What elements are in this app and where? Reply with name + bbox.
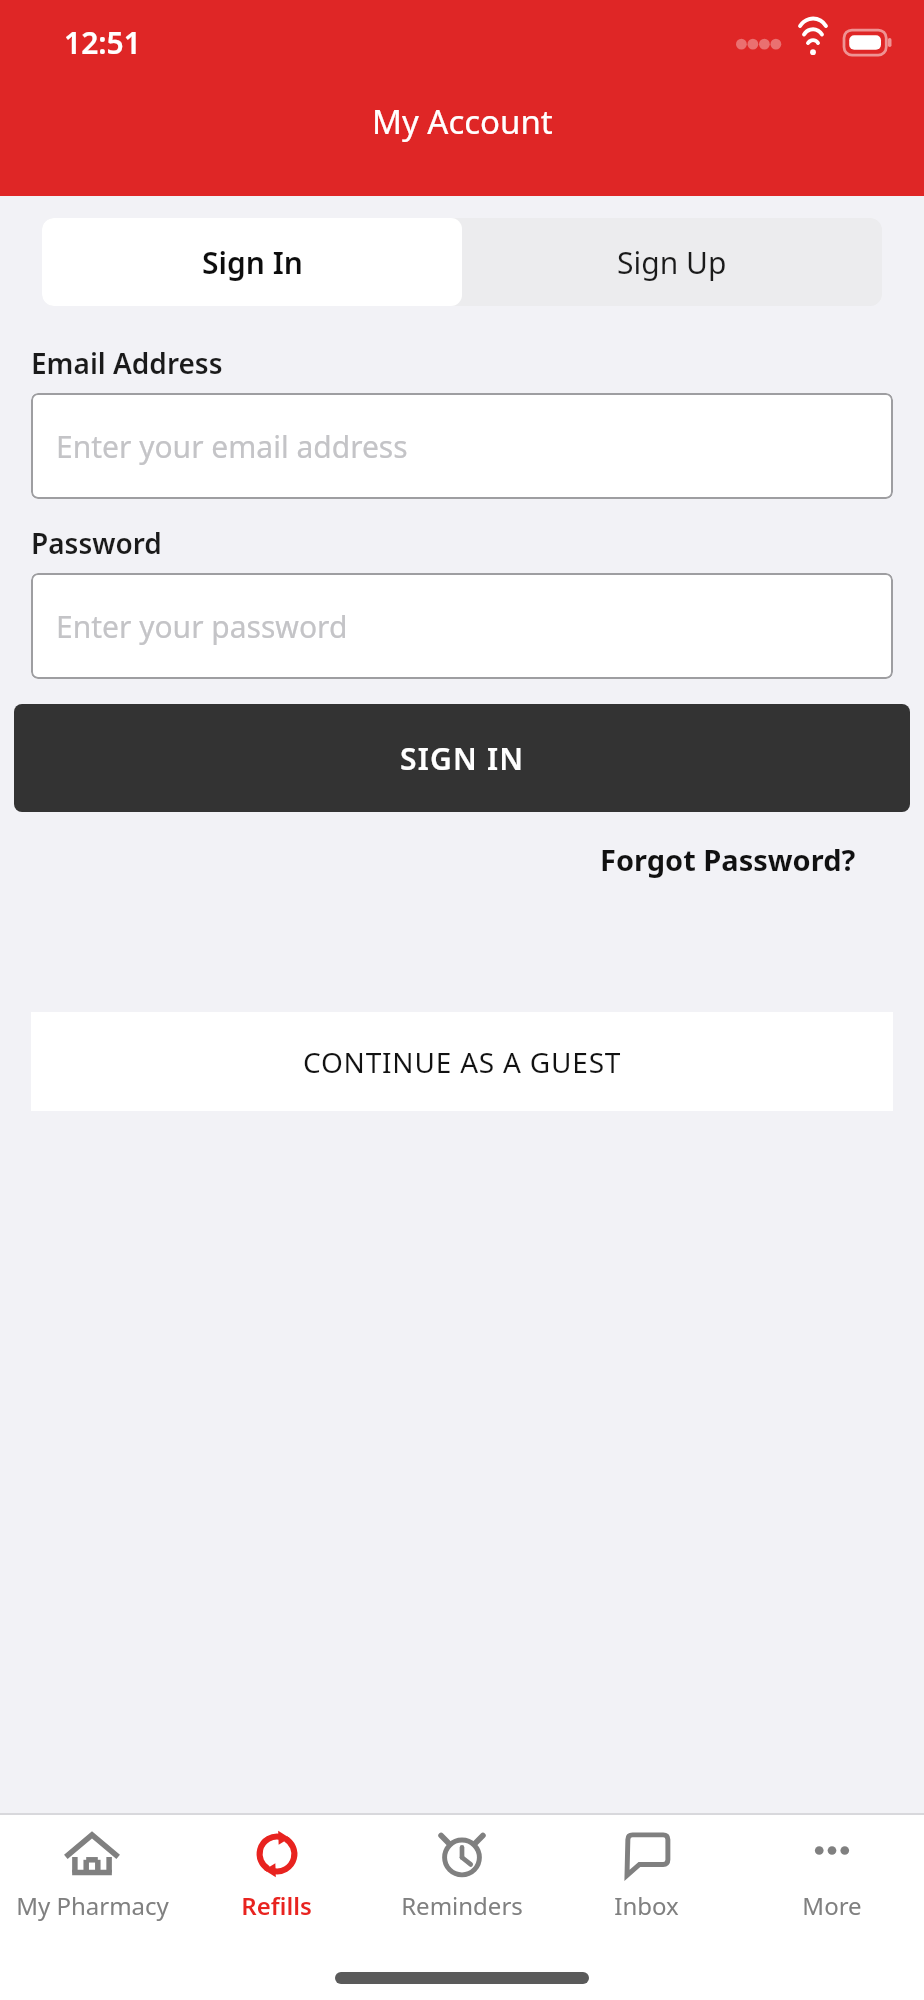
staticText: Forgot Password? (600, 840, 856, 879)
staticText: Email Address (31, 344, 223, 382)
button[interactable]: My Pharmacy (0, 1815, 184, 1938)
staticText: Password (31, 524, 162, 562)
staticText: Enter your password (56, 606, 348, 647)
staticText: More (802, 1889, 862, 1922)
staticText: My Account (372, 99, 553, 144)
staticText: SIGN IN (400, 738, 525, 779)
staticText: 12:51 (64, 22, 141, 63)
staticText: CONTINUE AS A GUEST (303, 1043, 622, 1081)
staticText: Refills (241, 1889, 312, 1922)
staticText: Reminders (401, 1889, 523, 1922)
button[interactable]: Enter your email address (31, 393, 893, 499)
button[interactable]: Forgot Password? (600, 840, 856, 879)
staticText: My Pharmacy (16, 1889, 169, 1922)
button[interactable]: Sign In (42, 218, 462, 306)
button[interactable]: Enter your password (31, 573, 893, 679)
staticText: Inbox (614, 1889, 679, 1922)
button[interactable]: Refills (184, 1815, 369, 1938)
staticText: Sign In (202, 242, 303, 283)
staticText: Enter your email address (56, 426, 408, 467)
button[interactable]: SIGN IN (14, 704, 910, 812)
button[interactable]: Reminders (369, 1815, 554, 1938)
button[interactable]: More (739, 1815, 924, 1938)
button[interactable]: CONTINUE AS A GUEST (31, 1012, 893, 1111)
button[interactable]: Sign Up (462, 218, 882, 306)
button[interactable]: Inbox (554, 1815, 739, 1938)
staticText: Sign Up (617, 242, 727, 283)
